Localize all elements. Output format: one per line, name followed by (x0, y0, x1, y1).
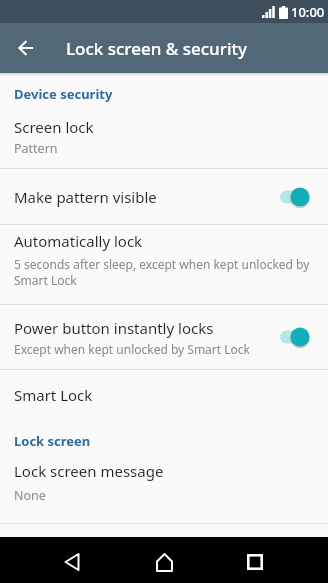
staticText: Lock screen message (14, 461, 164, 481)
button[interactable]: Screen lock (0, 110, 328, 168)
button[interactable]: Lock screen message (0, 456, 328, 514)
staticText: Except when kept unlocked by Smart Lock (14, 341, 250, 357)
staticText: Smart Lock (14, 385, 93, 405)
button[interactable]: Make pattern visible (0, 169, 328, 224)
button[interactable] (52, 542, 92, 582)
button[interactable] (235, 542, 275, 582)
staticText: Lock screen & security (66, 37, 248, 60)
button[interactable] (10, 32, 42, 64)
staticText: Make pattern visible (14, 187, 280, 207)
button[interactable]: Smart Lock (0, 370, 328, 426)
staticText: 10:00 (291, 3, 325, 21)
button[interactable] (144, 542, 184, 582)
staticText: Pattern (14, 140, 58, 157)
staticText: Power button instantly locks (14, 318, 214, 338)
staticText: Lock screen (14, 432, 91, 450)
staticText: None (14, 487, 46, 504)
staticText: Screen lock (14, 117, 94, 137)
staticText: Automatically lock (14, 231, 143, 251)
staticText: Device security (14, 85, 113, 103)
staticText: Smart Lock (14, 272, 77, 288)
staticText: 5 seconds after sleep, except when kept … (14, 256, 310, 272)
button[interactable]: Automatically lock (0, 225, 328, 304)
button[interactable]: Power button instantly locks (0, 305, 328, 369)
